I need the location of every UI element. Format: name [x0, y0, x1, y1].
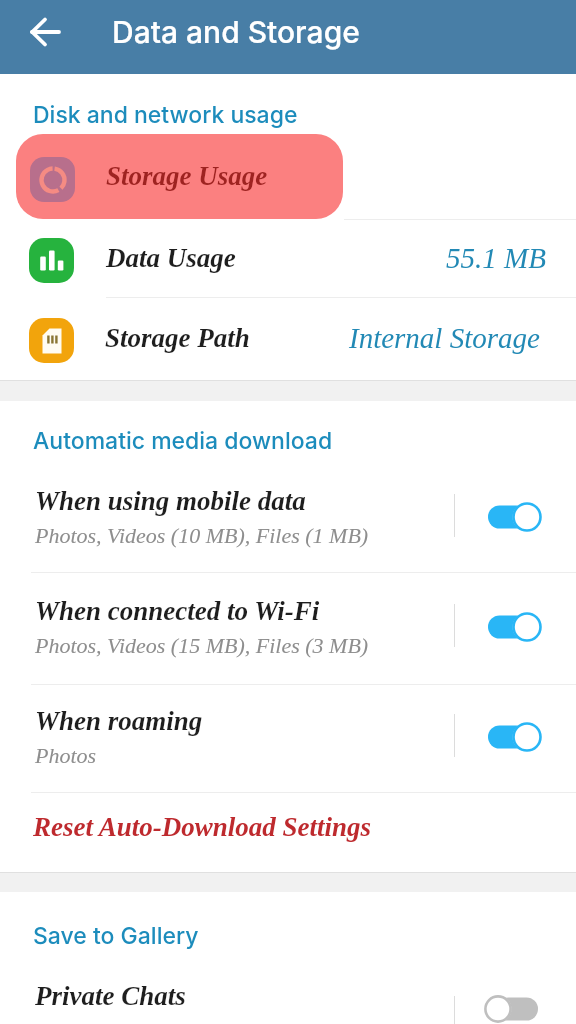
staticText: Private Chats — [35, 981, 186, 1011]
button[interactable]: Private Chats — [0, 975, 576, 1024]
staticText: Internal Storage — [349, 322, 540, 354]
staticText: When using mobile data — [35, 486, 306, 516]
staticText: When connected to Wi-Fi — [35, 596, 320, 626]
button[interactable]: When connected to Wi-Fi — [0, 590, 576, 678]
staticText: Storage Usage — [106, 161, 268, 191]
button[interactable]: Switch off — [484, 992, 542, 1024]
staticText: Storage Path — [105, 323, 250, 353]
button[interactable]: When using mobile data — [0, 480, 576, 568]
staticText: Photos — [35, 743, 97, 767]
button[interactable]: Storage Usage — [0, 138, 576, 219]
staticText: Photos, Videos (10 MB), Files (1 MB) — [35, 523, 369, 547]
button[interactable]: Switch on — [470, 500, 560, 534]
button[interactable]: Reset Auto-Download Settings — [0, 790, 576, 862]
staticText: Reset Auto-Download Settings — [33, 812, 372, 842]
button[interactable]: Switch on — [470, 610, 560, 644]
button[interactable]: Back — [17, 4, 73, 60]
staticText: Photos, Videos (15 MB), Files (3 MB) — [35, 633, 369, 657]
staticText: Save to Gallery — [33, 922, 199, 950]
button[interactable]: Switch on — [470, 720, 560, 754]
staticText: 55.1 MB — [446, 242, 546, 274]
staticText: When roaming — [35, 706, 203, 736]
button[interactable]: Storage Path — [0, 299, 576, 378]
staticText: Disk and network usage — [33, 101, 298, 129]
button[interactable]: When roaming — [0, 700, 576, 788]
staticText: Automatic media download — [33, 427, 333, 455]
staticText: Data Usage — [106, 243, 236, 273]
staticText: Data and Storage — [112, 14, 360, 50]
button[interactable]: Data Usage — [0, 219, 576, 298]
